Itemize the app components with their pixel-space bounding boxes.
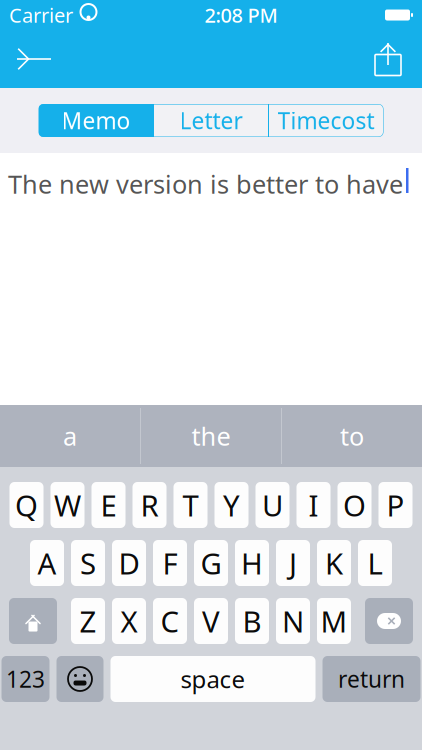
staticText: I: [308, 485, 318, 524]
button[interactable]: D: [112, 540, 146, 586]
button[interactable]: A: [30, 540, 64, 586]
staticText: D: [118, 543, 139, 582]
staticText: B: [242, 601, 261, 640]
button[interactable]: return: [322, 656, 420, 702]
button[interactable]: the: [141, 405, 281, 467]
button[interactable]: M: [317, 598, 351, 644]
staticText: 123: [6, 664, 45, 694]
staticText: O: [343, 485, 366, 524]
button[interactable]: B: [235, 598, 269, 644]
button[interactable]: W: [50, 482, 84, 528]
staticText: P: [386, 485, 404, 524]
staticText: E: [100, 485, 116, 524]
staticText: Memo: [61, 105, 130, 135]
staticText: S: [80, 543, 96, 582]
staticText: J: [289, 543, 297, 582]
staticText: A: [37, 543, 56, 582]
staticText: U: [262, 485, 283, 524]
staticText: return: [338, 664, 405, 694]
button[interactable]: space: [110, 656, 315, 702]
button[interactable]: N: [276, 598, 310, 644]
button[interactable]: to: [282, 405, 422, 467]
staticText: T: [182, 485, 198, 524]
button[interactable]: a: [0, 405, 140, 467]
button[interactable]: C: [153, 598, 187, 644]
button[interactable]: Emoji: [56, 656, 103, 702]
staticText: W: [54, 485, 81, 524]
button[interactable]: Share: [362, 37, 414, 81]
button[interactable]: U: [255, 482, 289, 528]
staticText: 2:08 PM: [204, 2, 277, 28]
staticText: K: [325, 543, 343, 582]
staticText: Q: [15, 485, 38, 524]
staticText: R: [140, 485, 158, 524]
button[interactable]: Timecost: [269, 104, 383, 137]
button[interactable]: Shift: [9, 598, 57, 644]
staticText: V: [202, 601, 220, 640]
button[interactable]: Memo: [39, 104, 153, 137]
button[interactable]: Delete: [365, 598, 413, 644]
button[interactable]: 123: [1, 656, 49, 702]
button[interactable]: Letter: [154, 104, 268, 137]
staticText: C: [160, 601, 179, 640]
button[interactable]: L: [358, 540, 392, 586]
button[interactable]: J: [276, 540, 310, 586]
button[interactable]: Y: [214, 482, 248, 528]
button[interactable]: V: [194, 598, 228, 644]
button[interactable]: H: [235, 540, 269, 586]
button[interactable]: I: [296, 482, 330, 528]
button[interactable]: K: [317, 540, 351, 586]
staticText: N: [282, 601, 304, 640]
button[interactable]: S: [71, 540, 105, 586]
button[interactable]: Q: [9, 482, 43, 528]
staticText: M: [320, 601, 347, 640]
button[interactable]: G: [194, 540, 228, 586]
staticText: X: [120, 601, 137, 640]
button[interactable]: O: [337, 482, 371, 528]
staticText: the: [191, 419, 230, 453]
staticText: Carrier: [9, 2, 73, 28]
button[interactable]: X: [112, 598, 146, 644]
staticText: The new version is better to have: [8, 167, 403, 201]
button[interactable]: Back: [8, 37, 60, 81]
staticText: to: [340, 419, 364, 453]
staticText: Letter: [179, 105, 242, 135]
staticText: Timecost: [277, 105, 374, 135]
staticText: H: [241, 543, 263, 582]
staticText: Z: [79, 601, 96, 640]
button[interactable]: P: [378, 482, 412, 528]
staticText: a: [63, 419, 77, 453]
button[interactable]: R: [132, 482, 166, 528]
button[interactable]: T: [173, 482, 207, 528]
button[interactable]: Z: [71, 598, 105, 644]
staticText: L: [367, 543, 382, 582]
button[interactable]: E: [91, 482, 125, 528]
staticText: F: [162, 543, 177, 582]
staticText: G: [200, 543, 221, 582]
staticText: Y: [223, 485, 240, 524]
button[interactable]: F: [153, 540, 187, 586]
staticText: space: [180, 663, 245, 695]
